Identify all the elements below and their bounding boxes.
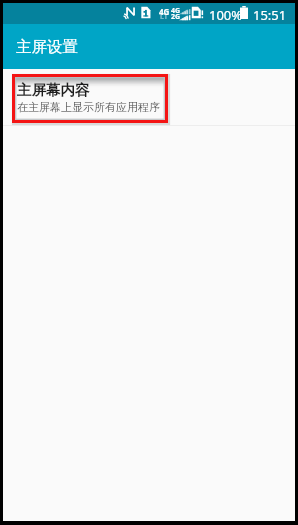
staticText: 主屏设置 <box>16 37 78 57</box>
staticText: 4G <box>159 6 170 17</box>
staticText: 4G <box>171 6 181 16</box>
staticText: 2G <box>171 12 181 22</box>
staticText: 15:51 <box>253 6 287 24</box>
staticText: 在主屏幕上显示所有应用程序 <box>17 100 160 114</box>
staticText: LT <box>160 12 168 22</box>
staticText: 100% <box>209 6 243 24</box>
staticText: 主屏幕内容 <box>17 81 90 99</box>
button[interactable]: 主屏幕内容 <box>3 76 295 125</box>
